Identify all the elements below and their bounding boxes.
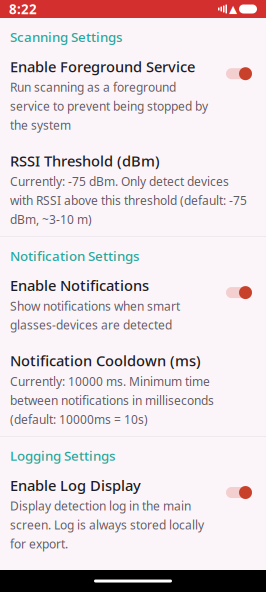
staticText: Show notifications when smart glasses-de…	[10, 298, 180, 333]
staticText: Display detection log in the main screen…	[10, 498, 204, 552]
staticText: Run scanning as a foreground service to …	[10, 79, 208, 133]
staticText: Enable Log Display	[10, 475, 141, 495]
staticText: Enable Notifications	[10, 276, 149, 295]
staticText: Notification Cooldown (ms)	[10, 351, 201, 370]
button[interactable]: Enable Foreground Service	[0, 48, 266, 142]
staticText: ▲	[229, 3, 237, 15]
button[interactable]: Toggle on	[222, 59, 256, 89]
button[interactable]: Toggle on	[222, 477, 256, 507]
button[interactable]: Debug	[0, 561, 266, 592]
staticText: Scanning Settings	[10, 28, 122, 46]
button[interactable]: Enable Notifications	[0, 267, 266, 342]
staticText: RSSI Threshold (dBm)	[10, 151, 160, 170]
staticText: Currently: 10000 ms. Minimum time betwee…	[10, 373, 214, 427]
staticText: Currently: -75 dBm. Only detect devices …	[10, 173, 247, 227]
button[interactable]: Enable Log Display	[0, 466, 266, 561]
button[interactable]: Toggle on	[222, 278, 256, 308]
staticText: Enable Foreground Service	[10, 57, 195, 76]
staticText: Notification Settings	[10, 247, 139, 265]
staticText: Logging Settings	[10, 447, 115, 464]
staticText: 8:22	[9, 0, 37, 18]
button[interactable]: RSSI Threshold (dBm)	[0, 142, 266, 236]
button[interactable]: Notification Cooldown (ms)	[0, 342, 266, 436]
